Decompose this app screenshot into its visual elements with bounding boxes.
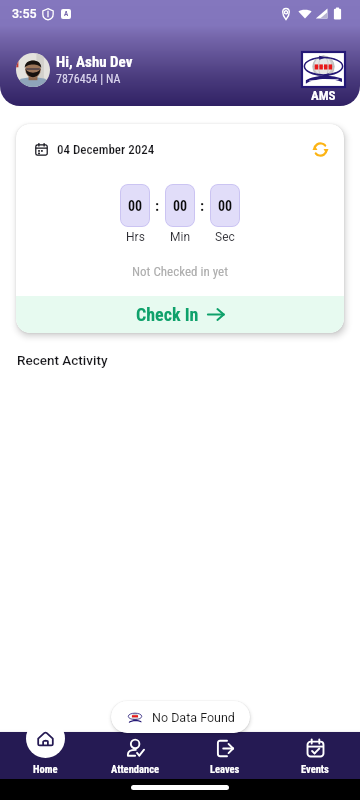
- button[interactable]: No Data Found: [111, 701, 250, 733]
- staticText: Leaves: [210, 763, 240, 775]
- button[interactable]: Refresh: [309, 138, 331, 160]
- staticText: 04 December 2024: [57, 142, 155, 157]
- staticText: Min: [170, 230, 191, 244]
- staticText: Hi, Ashu Dev: [56, 53, 133, 71]
- staticText: 00: [218, 198, 233, 214]
- staticText: Not Checked in yet: [16, 264, 344, 279]
- staticText: 7876454 | NA: [56, 72, 121, 86]
- button[interactable]: Check In: [16, 296, 344, 333]
- staticText: Attendance: [111, 763, 159, 775]
- staticText: 00: [128, 198, 143, 214]
- button[interactable]: Attendance: [90, 720, 180, 780]
- staticText: :: [200, 197, 205, 215]
- staticText: No Data Found: [152, 710, 235, 725]
- button[interactable]: Events: [270, 720, 360, 780]
- staticText: 00: [173, 198, 188, 214]
- staticText: Events: [301, 763, 329, 775]
- staticText: AMS: [311, 88, 336, 103]
- staticText: 3:55: [12, 6, 37, 21]
- button[interactable]: Leaves: [180, 720, 270, 780]
- staticText: Recent Activity: [17, 352, 108, 368]
- staticText: Sec: [215, 230, 235, 244]
- staticText: Hrs: [126, 230, 145, 244]
- staticText: Check In: [136, 304, 199, 325]
- staticText: Home: [33, 763, 58, 775]
- staticText: :: [155, 197, 160, 215]
- button[interactable]: Home: [0, 720, 90, 780]
- staticText: A: [64, 10, 69, 18]
